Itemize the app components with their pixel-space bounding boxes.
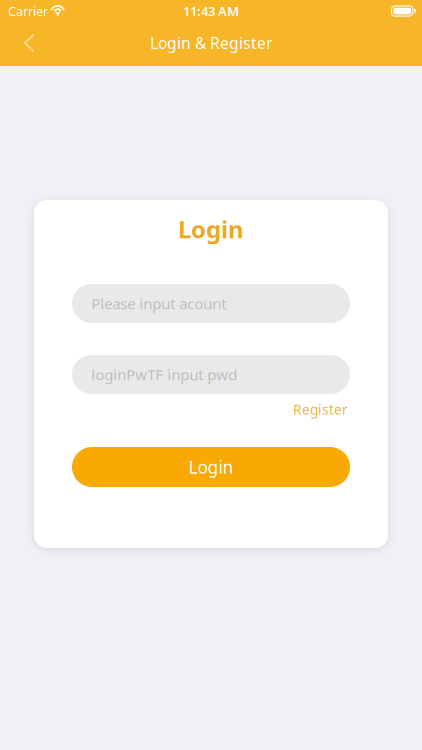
staticText: Please input acount [91, 293, 226, 314]
button[interactable]: Register [293, 399, 348, 420]
staticText: Login & Register [150, 32, 272, 54]
staticText: Login [178, 213, 244, 245]
button[interactable]: Back [0, 21, 46, 65]
staticText: Carrier [8, 2, 48, 20]
button[interactable]: Login [72, 447, 350, 487]
staticText: Register [293, 400, 348, 419]
staticText: 11:43 AM [183, 2, 239, 20]
staticText: loginPwTF input pwd [91, 364, 237, 385]
staticText: Login [188, 455, 233, 479]
